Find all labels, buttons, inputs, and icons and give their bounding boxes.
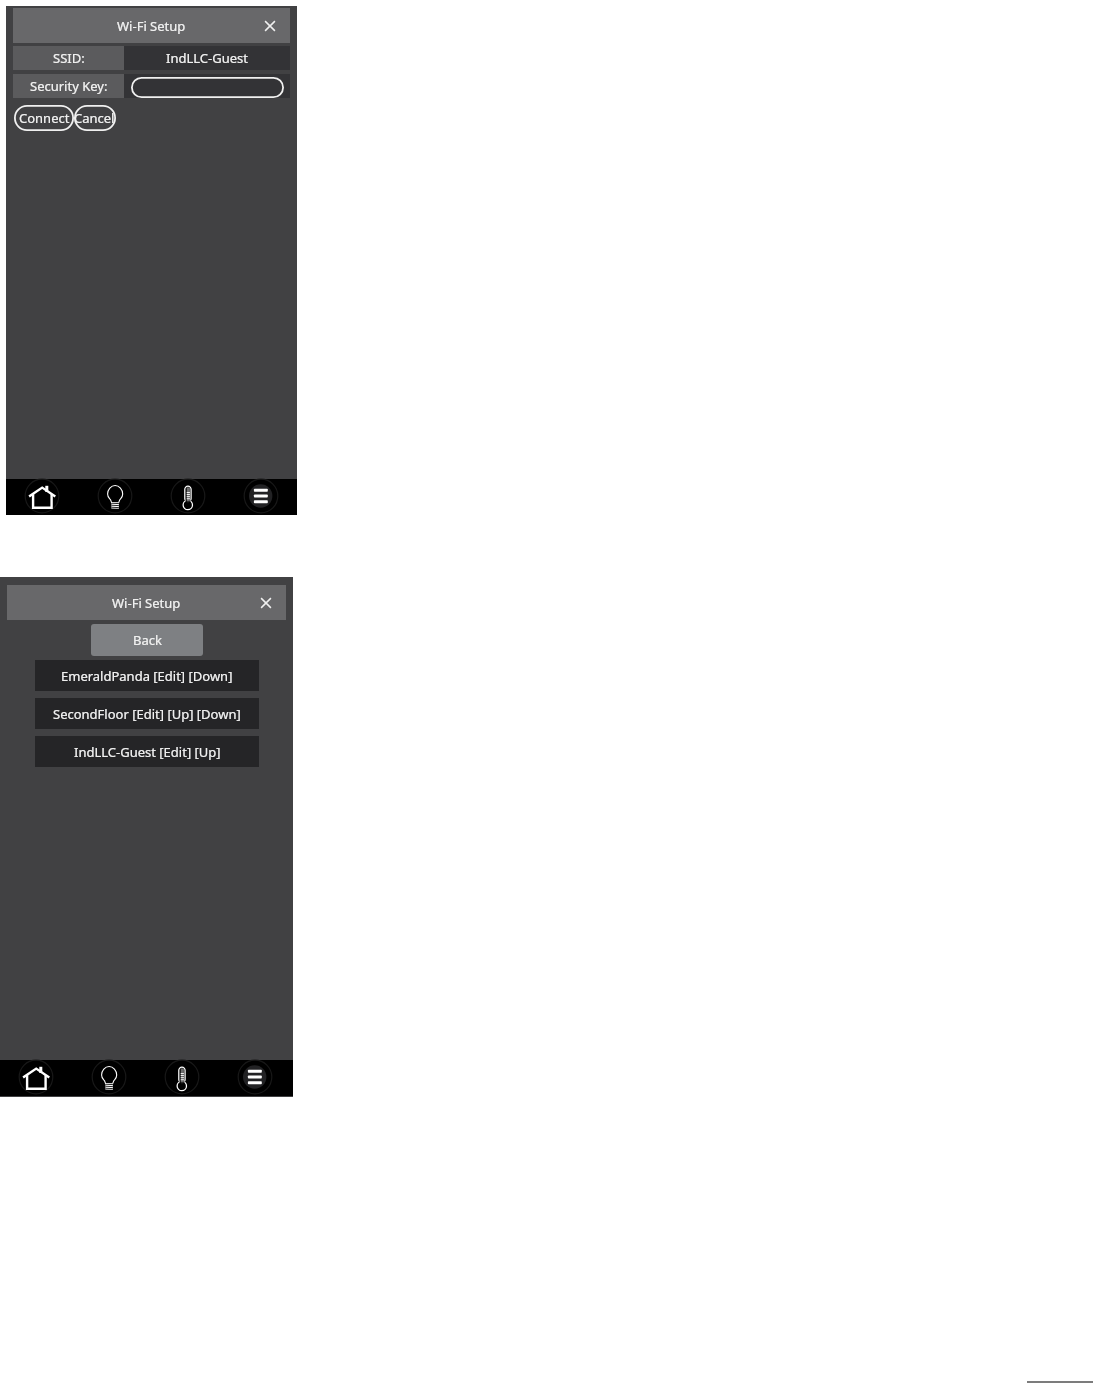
staticText: SSID: <box>53 49 85 67</box>
button[interactable]: Temperature <box>170 478 206 514</box>
staticText: EmeraldPanda [Edit] [Down] <box>61 667 233 685</box>
button[interactable]: Menu <box>237 1059 273 1095</box>
button[interactable]: SecondFloor [Edit] [Up] [Down] <box>35 698 259 729</box>
button[interactable]: Menu <box>243 478 279 514</box>
button[interactable]: SSID: <box>13 46 124 70</box>
button[interactable]: Temperature <box>164 1059 200 1095</box>
staticText: IndLLC-Guest <box>166 49 248 67</box>
button[interactable]: Home <box>24 478 60 514</box>
staticText: Wi-Fi Setup <box>117 17 186 35</box>
button[interactable]: Security key input field <box>131 77 284 98</box>
button[interactable]: EmeraldPanda [Edit] [Down] <box>35 660 259 691</box>
button[interactable]: Close <box>255 592 277 614</box>
staticText: Back <box>133 631 162 649</box>
button[interactable]: IndLLC-Guest [Edit] [Up] <box>35 736 259 767</box>
staticText: Wi-Fi Setup <box>112 594 181 612</box>
staticText: Cancel <box>74 109 115 127</box>
staticText: Connect <box>19 109 70 127</box>
button[interactable]: Close <box>259 15 281 37</box>
button[interactable]: Connect <box>14 105 74 131</box>
button[interactable]: Security Key: <box>13 74 124 98</box>
button[interactable]: Cancel <box>74 105 116 131</box>
staticText: Security Key: <box>30 77 108 95</box>
button[interactable]: Lights <box>97 478 133 514</box>
staticText: SecondFloor [Edit] [Up] [Down] <box>53 705 241 723</box>
button[interactable]: Lights <box>91 1059 127 1095</box>
button[interactable]: Back <box>91 624 203 656</box>
button[interactable]: IndLLC-Guest <box>124 46 290 70</box>
staticText: IndLLC-Guest [Edit] [Up] <box>74 743 221 761</box>
button[interactable]: Home <box>18 1059 54 1095</box>
